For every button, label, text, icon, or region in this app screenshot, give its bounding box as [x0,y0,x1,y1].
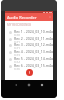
button[interactable]: Back [14,83,18,87]
button[interactable]: Rec 5 - 2024_03_14.m4a [5,56,53,63]
staticText: Rec 3 - 2024_03_12.m4a [14,42,53,47]
button[interactable]: Rec 1 - 2024_03_10.m4a [5,29,53,36]
button[interactable]: Rec 2 - 2024_03_11.m4a [5,36,53,43]
button[interactable]: Record [26,69,33,76]
button[interactable]: Home [27,83,31,87]
staticText: 0:23 [14,54,20,56]
staticText: Rec 6 - 2024_03_15.m4a [14,63,53,68]
staticText: 0:20 [14,34,20,36]
button[interactable]: Rec 6 - 2024_03_15.m4a [5,63,53,70]
staticText: MY RECORDINGS [7,23,32,27]
button[interactable]: Recents [40,83,44,87]
staticText: Rec 5 - 2024_03_14.m4a [14,56,53,61]
button[interactable]: More options [48,15,52,19]
button[interactable]: Audio Recorder [5,13,53,21]
button[interactable]: Rec 4 - 2024_03_13.m4a [5,49,53,56]
staticText: 0:21 [14,41,20,43]
staticText: Audio Recorder [7,15,37,20]
button[interactable]: Rec 3 - 2024_03_12.m4a [5,42,53,49]
staticText: Rec 2 - 2024_03_11.m4a [14,36,53,41]
staticText: 0:24 [14,61,20,63]
staticText: Rec 4 - 2024_03_13.m4a [14,49,53,54]
staticText: Rec 1 - 2024_03_10.m4a [14,29,53,34]
staticText: 0:22 [14,47,20,49]
staticText: 0:25 [14,68,20,70]
